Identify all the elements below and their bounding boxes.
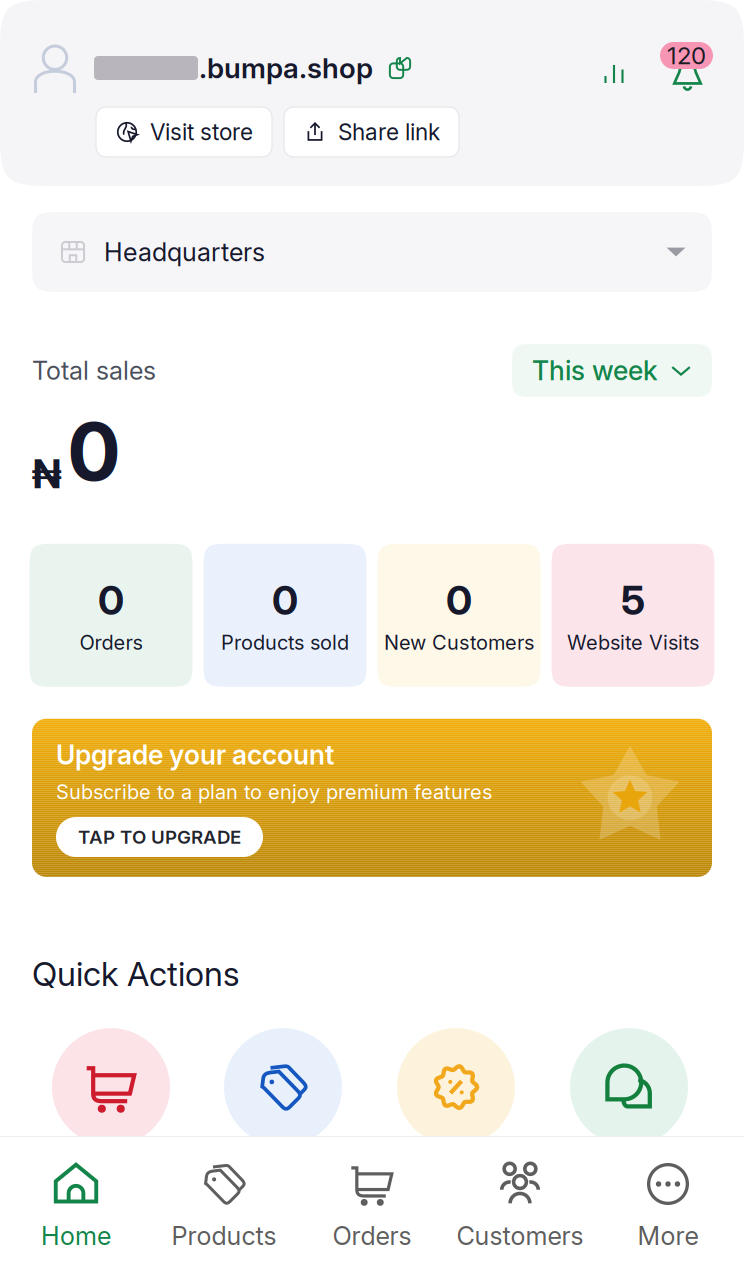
staticText: 5 bbox=[621, 576, 645, 624]
staticText: Home bbox=[41, 1220, 111, 1251]
button[interactable]: Products bbox=[150, 1137, 298, 1280]
staticText: Products bbox=[171, 1220, 276, 1251]
button[interactable]: Home bbox=[2, 1137, 150, 1280]
staticText: Customers bbox=[456, 1220, 583, 1251]
button[interactable]: New order bbox=[52, 1028, 170, 1146]
button[interactable]: Upgrade your account bbox=[32, 719, 712, 877]
button[interactable]: Notifications bbox=[660, 42, 713, 94]
staticText: Quick Actions bbox=[32, 954, 240, 994]
staticText: 0 bbox=[98, 576, 124, 624]
staticText: TAP TO UPGRADE bbox=[78, 826, 241, 848]
staticText: New Customers bbox=[384, 630, 534, 655]
staticText: More bbox=[637, 1220, 698, 1251]
button[interactable]: Share link bbox=[284, 107, 459, 157]
button[interactable]: Create discount bbox=[397, 1028, 515, 1146]
staticText: 0 bbox=[272, 576, 298, 624]
button[interactable]: Customers bbox=[446, 1137, 594, 1280]
staticText: 120 bbox=[667, 41, 706, 70]
button[interactable]: Copy store link bbox=[385, 53, 415, 83]
staticText: ₦ bbox=[32, 449, 61, 498]
staticText: 0 bbox=[446, 576, 472, 624]
button[interactable]: Messages bbox=[570, 1028, 688, 1146]
button[interactable]: Visit store bbox=[96, 107, 272, 157]
button[interactable]: More bbox=[594, 1137, 742, 1280]
staticText: Headquarters bbox=[104, 237, 265, 267]
staticText: Share link bbox=[338, 118, 440, 146]
staticText: Orders bbox=[332, 1220, 411, 1251]
button[interactable]: Headquarters bbox=[32, 212, 712, 292]
staticText: This week bbox=[532, 354, 658, 387]
staticText: .bumpa.shop bbox=[199, 51, 373, 85]
button[interactable]: Orders bbox=[298, 1137, 446, 1280]
button[interactable]: This week bbox=[512, 344, 712, 397]
staticText: 0 bbox=[67, 403, 121, 500]
staticText: Orders bbox=[79, 630, 142, 655]
staticText: Total sales bbox=[32, 355, 156, 386]
staticText: Subscribe to a plan to enjoy premium fea… bbox=[56, 780, 492, 804]
staticText: Website Visits bbox=[567, 630, 699, 655]
staticText: Products sold bbox=[221, 630, 349, 655]
button[interactable]: Analytics bbox=[596, 42, 632, 94]
staticText: Upgrade your account bbox=[56, 739, 334, 771]
button[interactable]: Add product bbox=[224, 1028, 342, 1146]
staticText: Visit store bbox=[150, 118, 253, 146]
